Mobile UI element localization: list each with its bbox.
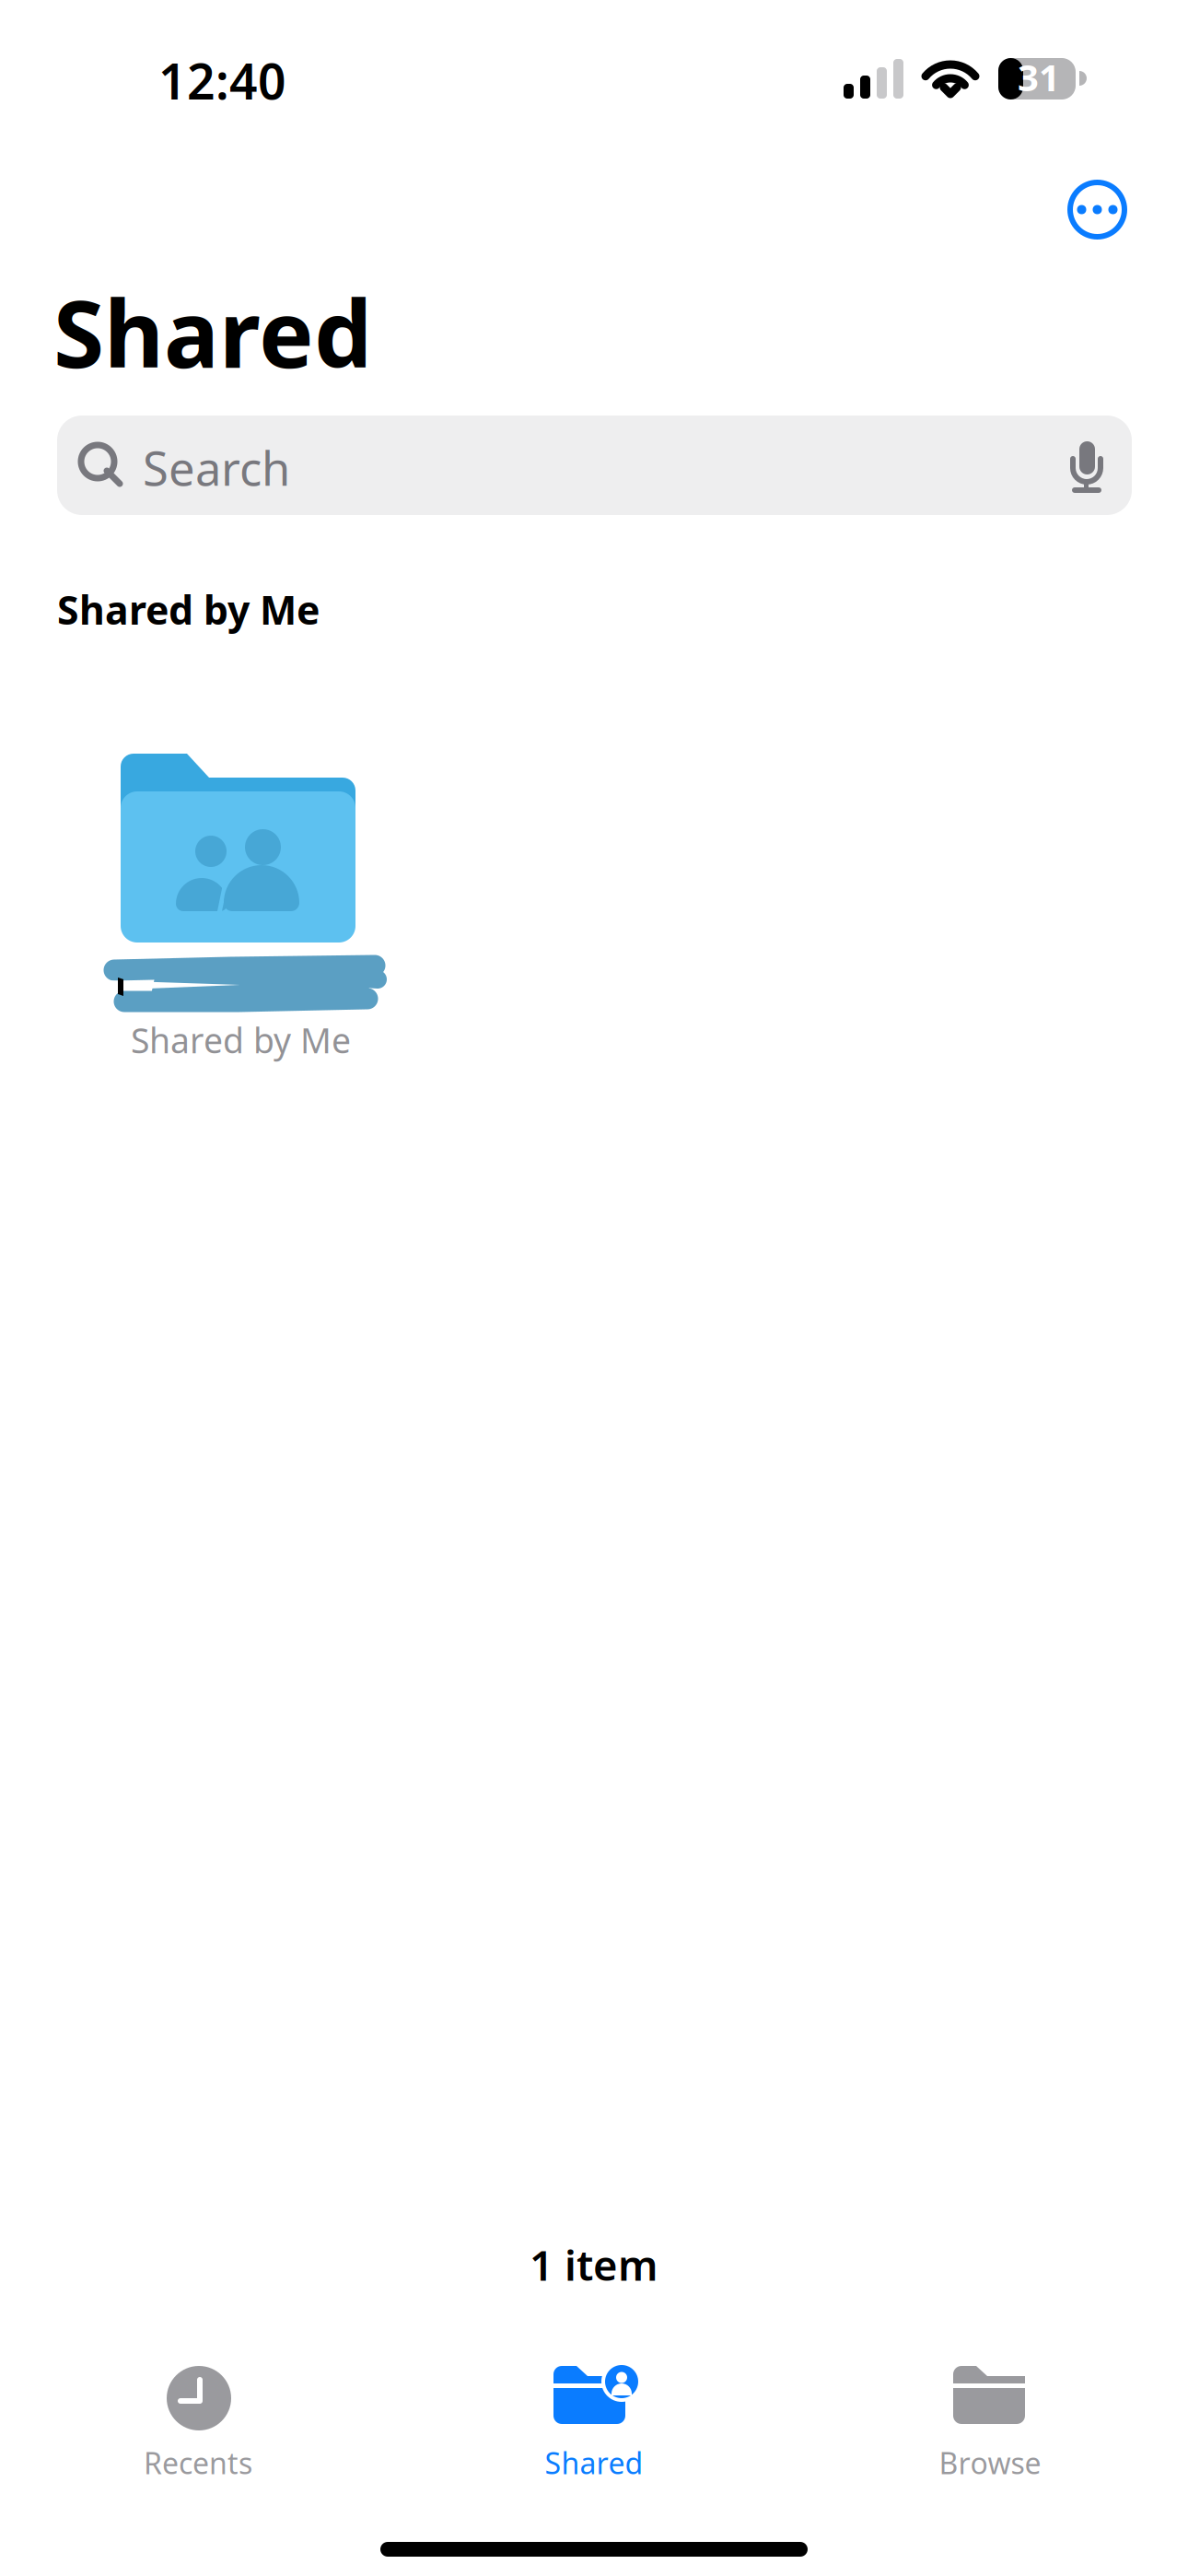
staticText: 31	[1018, 53, 1060, 101]
button[interactable]: Shared by Me	[102, 754, 415, 1058]
staticText: Shared	[53, 271, 372, 393]
button[interactable]: More	[1050, 165, 1138, 253]
button[interactable]: Search	[57, 416, 1132, 515]
staticText: Shared by Me	[131, 1017, 351, 1063]
staticText: 12:40	[158, 48, 286, 113]
staticText: Browse	[939, 2443, 1041, 2482]
button[interactable]: Shared	[396, 2351, 792, 2499]
button[interactable]: Browse	[792, 2351, 1188, 2499]
button[interactable]: Recents	[0, 2351, 396, 2499]
staticText: 1 item	[530, 2237, 658, 2292]
staticText: Shared by Me	[57, 583, 320, 635]
staticText: Recents	[144, 2443, 252, 2482]
staticText: Search	[143, 437, 290, 499]
staticText: Shared	[545, 2443, 643, 2482]
